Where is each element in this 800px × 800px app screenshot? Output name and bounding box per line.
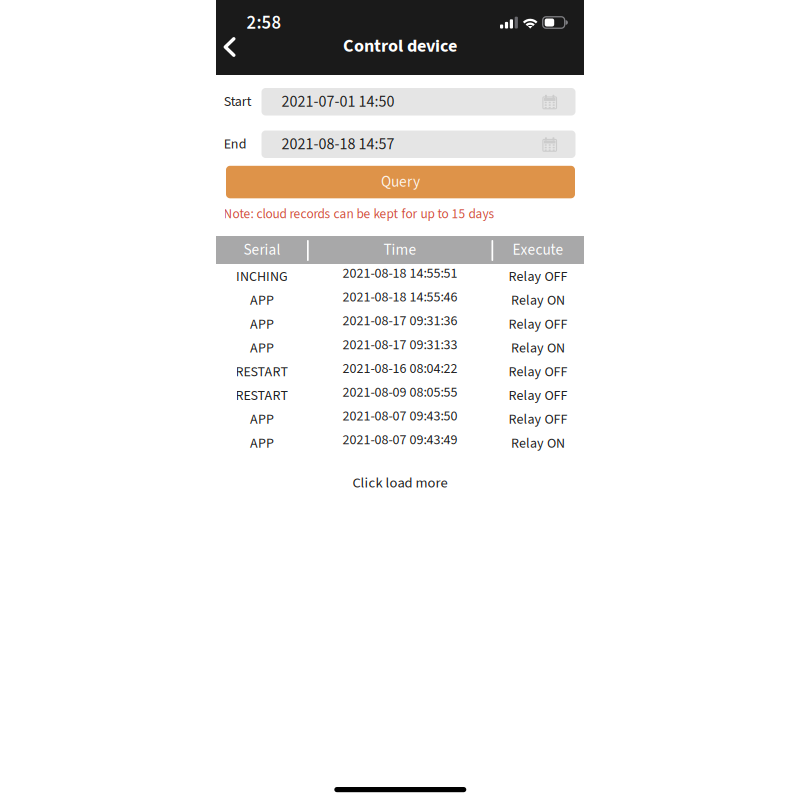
staticText: 2021-08-09 08:05:55 [342, 382, 457, 402]
staticText: 2021-07-01 14:50 [281, 90, 394, 113]
staticText: APP [250, 290, 274, 310]
staticText: Note: cloud records can be kept for up t… [223, 204, 494, 223]
staticText: 2021-08-16 08:04:22 [342, 359, 457, 378]
staticText: 2021-08-17 09:31:36 [342, 311, 457, 331]
staticText: Execute [512, 239, 563, 261]
staticText: Query [381, 171, 420, 193]
staticText: End [224, 134, 247, 154]
button[interactable]: Click load more [216, 471, 584, 495]
staticText: 2:58 [246, 10, 281, 36]
staticText: INCHING [236, 267, 288, 287]
staticText: RESTART [235, 386, 288, 406]
staticText: Relay ON [511, 338, 565, 358]
button[interactable]: 2021-07-01 14:50 [261, 88, 575, 115]
staticText: Click load more [352, 473, 447, 493]
button[interactable]: Back [214, 32, 244, 62]
staticText: Relay ON [511, 433, 565, 453]
staticText: Relay OFF [508, 386, 567, 406]
staticText: APP [250, 314, 274, 334]
staticText: APP [250, 338, 274, 358]
staticText: RESTART [235, 362, 288, 382]
staticText: Relay ON [511, 290, 565, 310]
staticText: 2021-08-18 14:55:46 [342, 287, 457, 307]
staticText: Serial [243, 239, 280, 261]
staticText: 2021-08-07 09:43:49 [342, 430, 457, 450]
staticText: Relay OFF [508, 267, 567, 287]
staticText: 2021-08-17 09:31:33 [342, 335, 457, 355]
staticText: Relay OFF [508, 409, 567, 429]
staticText: Relay OFF [508, 314, 567, 334]
staticText: 2021-08-18 14:55:51 [342, 263, 457, 283]
staticText: Control device [343, 33, 457, 59]
staticText: APP [250, 409, 274, 429]
staticText: APP [250, 433, 274, 453]
button[interactable]: Query [226, 166, 575, 198]
staticText: 2021-08-18 14:57 [281, 133, 394, 156]
staticText: 2021-08-07 09:43:50 [342, 406, 457, 426]
staticText: Time [383, 239, 416, 261]
button[interactable]: 2021-08-18 14:57 [261, 130, 575, 158]
staticText: Start [224, 92, 252, 112]
staticText: Relay OFF [508, 362, 567, 382]
